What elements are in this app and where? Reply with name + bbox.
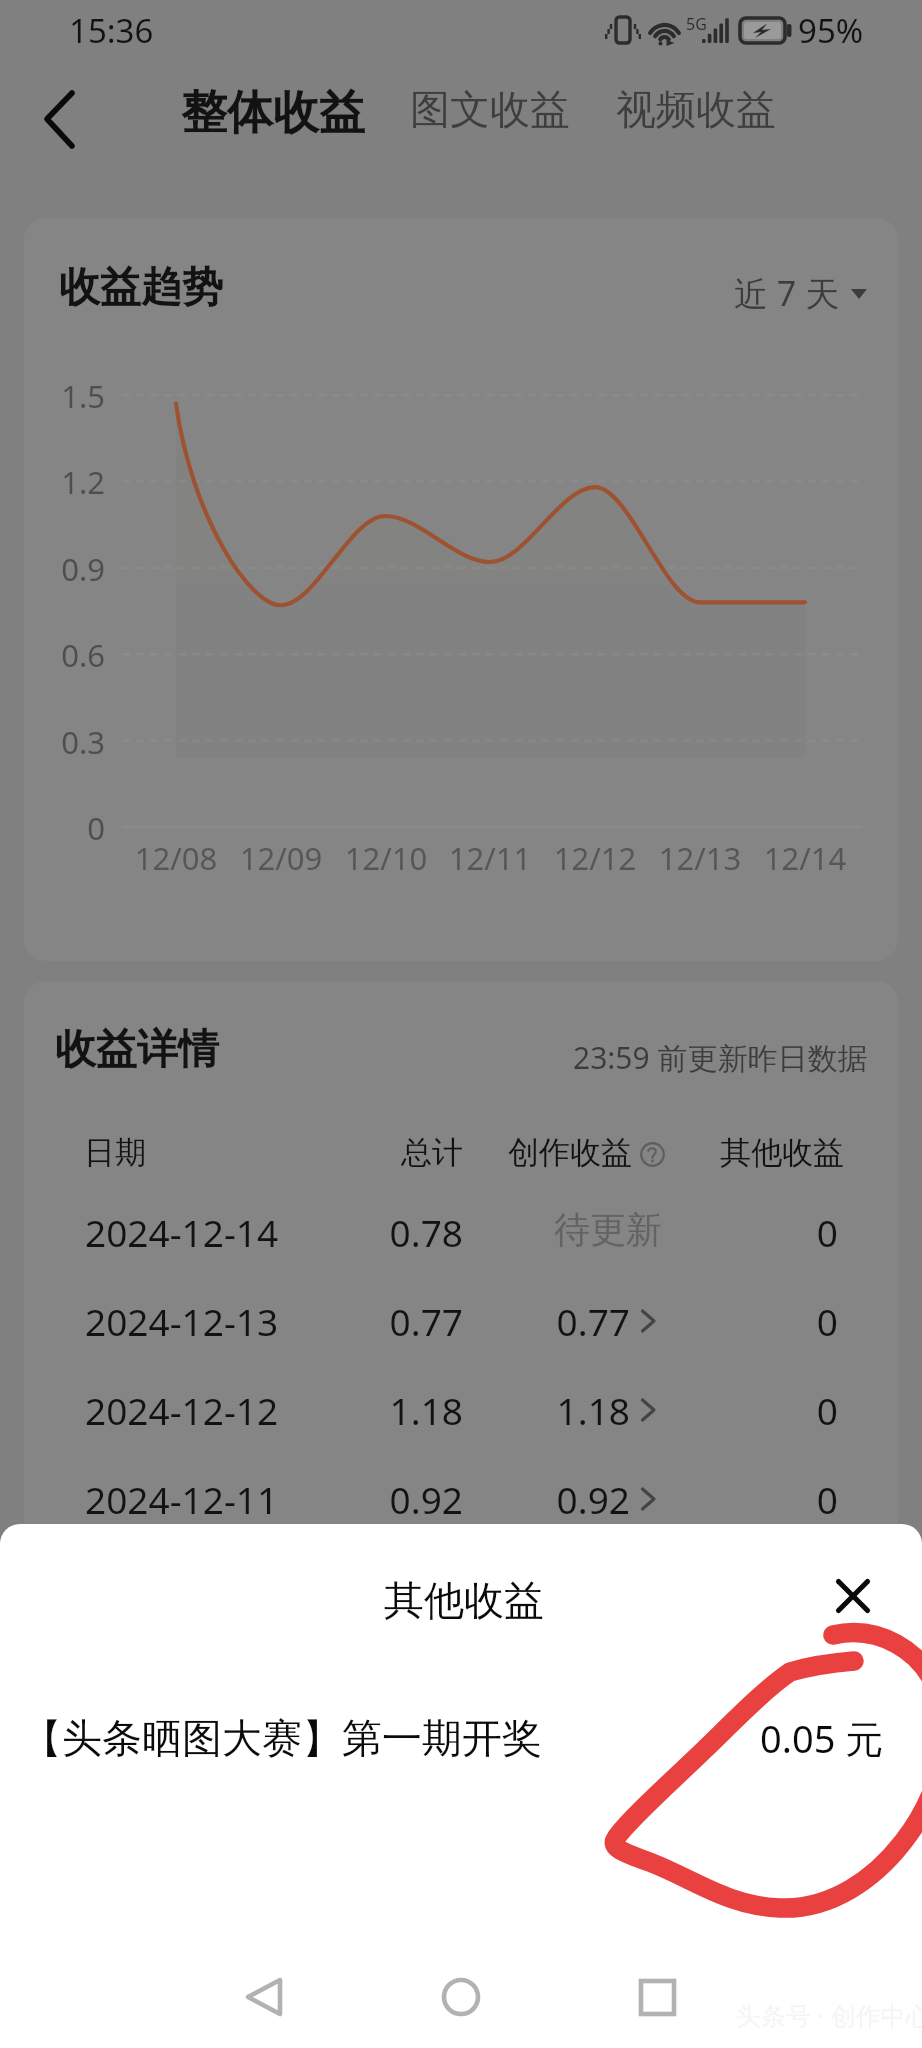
staticText: 1.5 [25,375,105,417]
staticText: 0 [690,1385,838,1435]
button[interactable]: 【头条晒图大赛】第一期开奖 [0,1712,922,1764]
staticText: 收益趋势 [59,262,223,314]
staticText: 1.18 [200,1385,463,1435]
button[interactable]: 创作收益 [508,1133,665,1172]
button[interactable]: 图文收益 [406,84,574,134]
staticText: 12/09 [221,837,341,879]
staticText: 视频收益 [616,84,776,134]
staticText: 0.77 [500,1296,630,1346]
staticText: 12/10 [326,837,446,879]
button[interactable]: 0.77 [500,1296,656,1346]
staticText: 12/13 [640,837,760,879]
button[interactable]: Home [421,1957,501,2037]
staticText: 0 [25,807,105,849]
staticText: 1.18 [500,1385,630,1435]
button[interactable]: 近 7 天 [734,270,867,316]
staticText: 待更新 [500,1207,716,1252]
staticText: 近 7 天 [734,270,840,316]
staticText: 12/11 [430,837,550,879]
button[interactable]: Close [821,1564,885,1628]
staticText: 0.3 [25,721,105,763]
button[interactable]: Back [22,69,98,145]
staticText: 其他收益 [3,1575,922,1625]
staticText: 2024-12-12 [85,1385,279,1435]
staticText: 0.9 [25,548,105,590]
staticText: 2024-12-13 [85,1296,279,1346]
staticText: 12/14 [745,837,865,879]
staticText: 0 [690,1296,838,1346]
staticText: 总计 [200,1133,463,1172]
staticText: 2024-12-14 [85,1207,279,1257]
staticText: 0 [690,1474,838,1524]
staticText: 5G [686,13,707,35]
button[interactable]: 1.18 [500,1385,656,1435]
staticText: 其他收益 [690,1133,844,1172]
staticText: 0.77 [200,1296,463,1346]
staticText: 收益详情 [55,1024,219,1076]
staticText: 图文收益 [410,84,570,134]
staticText: 12/08 [116,837,236,879]
button[interactable]: Back [224,1957,304,2037]
staticText: 2024-12-11 [85,1474,279,1524]
staticText: 1.2 [25,461,105,503]
button[interactable]: 整体收益 [177,84,369,142]
staticText: 23:59 前更新昨日数据 [573,1037,868,1078]
staticText: 创作收益 [508,1133,632,1172]
button[interactable]: 视频收益 [612,84,780,134]
staticText: 15:36 [69,8,154,53]
staticText: 头条号 · 创作中心 [736,1998,922,2032]
staticText: 12/12 [535,837,655,879]
staticText: 0 [690,1207,838,1257]
button[interactable]: Recent apps [617,1957,697,2037]
staticText: 0.6 [25,634,105,676]
staticText: 【头条晒图大赛】第一期开奖 [22,1713,542,1763]
staticText: 0.05 元 [760,1712,884,1764]
staticText: 整体收益 [181,84,365,142]
staticText: 95% [798,8,864,53]
staticText: 0.92 [500,1474,630,1524]
button[interactable]: 0.92 [500,1474,656,1524]
staticText: 0.92 [200,1474,463,1524]
staticText: 0.78 [200,1207,463,1257]
staticText: 日期 [84,1133,146,1172]
